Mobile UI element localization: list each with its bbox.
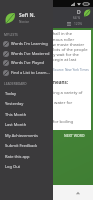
button[interactable]: Log Out — [0, 162, 53, 171]
staticText: washing yourself; 2. — [6, 110, 46, 116]
staticText: This Month — [5, 112, 27, 117]
staticText: Find a List to Learn... — [11, 70, 50, 75]
staticText: NEXT WORD — [64, 133, 85, 138]
button[interactable]: Sefi N. — [0, 6, 53, 30]
staticText: Yesterday — [5, 101, 24, 106]
staticText: 1. a vessel used for holding a variety o… — [6, 90, 83, 96]
staticText: LEADERBOARD — [4, 82, 27, 86]
staticText: There was once a great hall in the Outwo… — [6, 31, 89, 62]
staticText: Words I've Mastered — [11, 51, 50, 56]
button[interactable]: Find a List to Learn... — [0, 68, 53, 77]
staticText: things, such as hot bath water for — [6, 100, 73, 106]
staticText: ADD TO LIST — [8, 133, 29, 138]
staticText: 64 % — [73, 16, 81, 20]
button[interactable]: Today — [0, 89, 53, 98]
staticText: Words I've Played — [11, 60, 45, 65]
staticText: Last Month — [5, 122, 27, 127]
button[interactable]: My Achievements — [0, 131, 53, 140]
button[interactable]: Last Month — [0, 120, 53, 129]
staticText: Submit Feedback — [5, 143, 38, 148]
staticText: the word cauldrons means: — [6, 79, 69, 85]
staticText: Novice — [19, 20, 30, 24]
staticText: a very large kettle used for boiling — [6, 119, 74, 125]
staticText: Sefi N. — [19, 12, 35, 19]
staticText: Rate this app — [5, 154, 30, 159]
staticText: Today — [5, 91, 17, 96]
staticText: D — [77, 9, 81, 16]
button[interactable]: This Month — [0, 110, 53, 119]
button[interactable]: Words I've Played — [0, 58, 53, 67]
staticText: Log Out — [5, 164, 21, 169]
button[interactable]: Yesterday — [0, 99, 53, 108]
staticText: 120% — [74, 22, 83, 26]
button[interactable]: NEXT WORD — [62, 131, 87, 140]
staticText: Words I'm Learning — [11, 41, 48, 46]
button[interactable]: Words I'm Learning — [0, 39, 53, 48]
staticText: MY LISTS — [4, 33, 18, 37]
staticText: Source: New York Times — [53, 68, 89, 72]
button[interactable]: Submit Feedback — [0, 141, 53, 150]
staticText: My Achievements — [5, 133, 38, 138]
button[interactable]: Rate this app — [0, 152, 53, 161]
button[interactable]: ADD TO LIST — [6, 131, 31, 140]
button[interactable]: Words I've Mastered — [0, 49, 53, 58]
